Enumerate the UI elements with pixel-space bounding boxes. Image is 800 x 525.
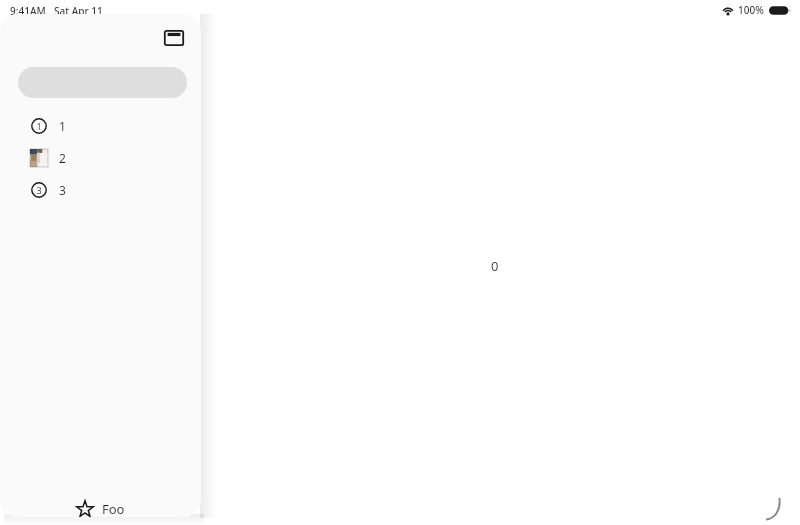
button[interactable]: 1 — [0, 110, 201, 142]
button[interactable]: Toggle panel — [159, 25, 189, 51]
button[interactable]: 3 — [0, 174, 201, 206]
staticText: 3 — [59, 182, 66, 198]
staticText: 1 — [59, 118, 66, 134]
staticText: 1 — [36, 120, 42, 132]
staticText: Sat Apr 11 — [54, 4, 103, 18]
staticText: Foo — [102, 500, 125, 517]
staticText: 2 — [59, 150, 66, 166]
staticText: 0 — [491, 257, 499, 275]
staticText: 9:41AM — [10, 4, 46, 18]
staticText: 3 — [36, 184, 42, 196]
button[interactable]: Search — [18, 67, 187, 98]
button[interactable]: 2 — [0, 142, 201, 174]
button[interactable]: Foo — [0, 492, 201, 517]
staticText: 100% — [738, 3, 764, 17]
